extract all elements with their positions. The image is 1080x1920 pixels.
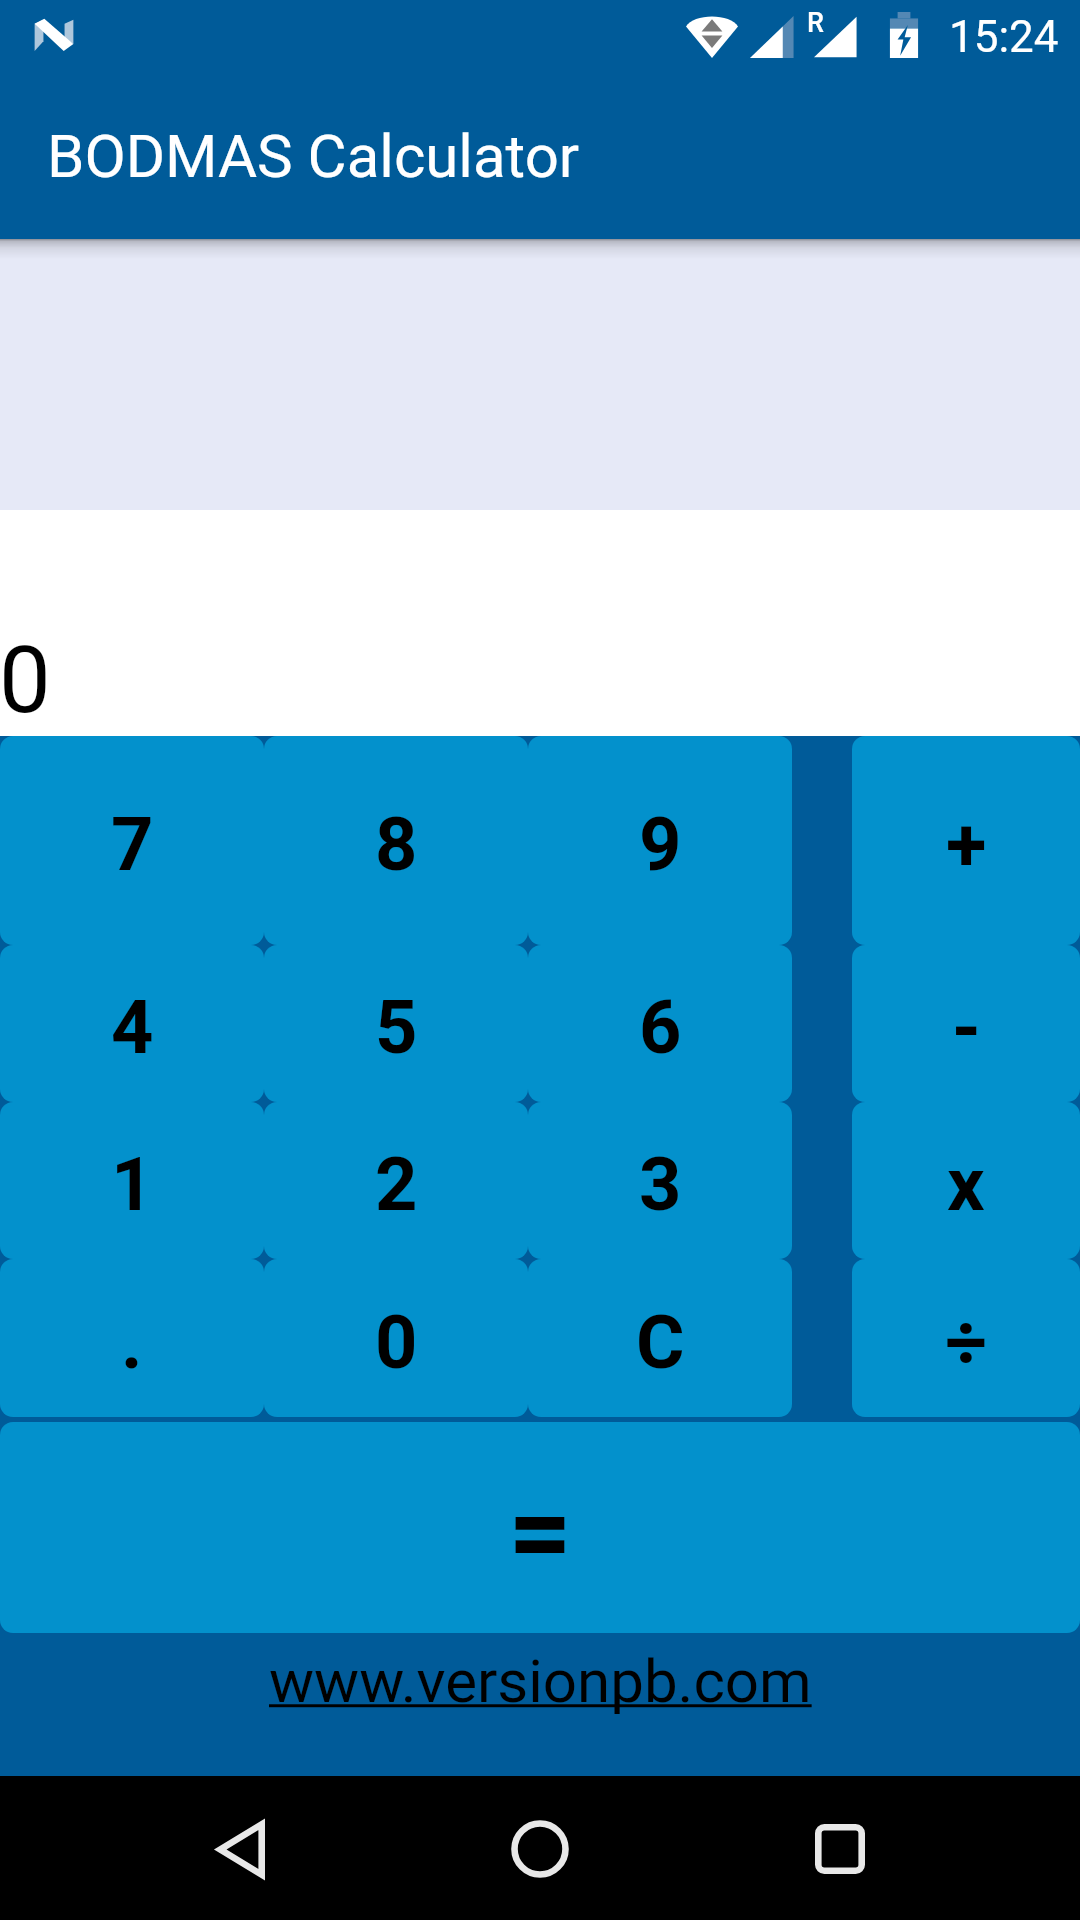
- button[interactable]: 9: [528, 736, 792, 945]
- staticText: R: [807, 7, 824, 39]
- button[interactable]: 2: [264, 1102, 528, 1259]
- button[interactable]: x: [852, 1102, 1080, 1259]
- staticText: 6: [639, 984, 682, 1071]
- staticText: .: [121, 1299, 143, 1386]
- staticText: 7: [111, 801, 154, 888]
- button[interactable]: 0: [264, 1259, 528, 1417]
- staticText: 4: [111, 984, 154, 1071]
- staticText: +: [946, 801, 987, 888]
- staticText: 0: [0, 627, 51, 735]
- staticText: 2: [375, 1141, 418, 1228]
- button[interactable]: ÷: [852, 1259, 1080, 1417]
- staticText: 1: [111, 1141, 154, 1228]
- staticText: =: [508, 1466, 573, 1597]
- staticText: 8: [375, 801, 418, 888]
- button[interactable]: www.versionpb.com: [269, 1646, 812, 1716]
- staticText: C: [636, 1299, 685, 1386]
- staticText: 9: [639, 801, 682, 888]
- button[interactable]: 5: [264, 945, 528, 1102]
- button[interactable]: 3: [528, 1102, 792, 1259]
- staticText: 15:24: [949, 11, 1059, 63]
- button[interactable]: 7: [0, 736, 264, 945]
- staticText: ÷: [945, 1299, 988, 1386]
- staticText: BODMAS Calculator: [47, 121, 580, 191]
- button[interactable]: 1: [0, 1102, 264, 1259]
- button[interactable]: Home: [450, 1776, 630, 1920]
- staticText: 0: [375, 1299, 418, 1386]
- staticText: x: [947, 1141, 985, 1228]
- staticText: -: [952, 984, 981, 1071]
- button[interactable]: Expression input: [0, 239, 1080, 510]
- button[interactable]: 4: [0, 945, 264, 1102]
- button[interactable]: 0: [0, 510, 1080, 736]
- button[interactable]: Recent apps: [750, 1776, 930, 1920]
- staticText: 5: [375, 984, 418, 1071]
- button[interactable]: -: [852, 945, 1080, 1102]
- button[interactable]: =: [0, 1422, 1080, 1633]
- staticText: 3: [639, 1141, 682, 1228]
- button[interactable]: 8: [264, 736, 528, 945]
- button[interactable]: Back: [150, 1776, 330, 1920]
- button[interactable]: C: [528, 1259, 792, 1417]
- button[interactable]: 6: [528, 945, 792, 1102]
- button[interactable]: .: [0, 1259, 264, 1417]
- button[interactable]: +: [852, 736, 1080, 945]
